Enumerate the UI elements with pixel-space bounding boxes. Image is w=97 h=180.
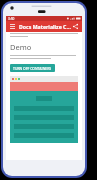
- button[interactable]: TURN OFF CONTAINERS: [10, 64, 55, 72]
- staticText: Demo: [10, 42, 32, 52]
- staticText: Docs Materialize CSS: [19, 23, 71, 30]
- button[interactable]: Open navigation menu: [8, 22, 17, 31]
- staticText: 3:50: [8, 17, 15, 21]
- button[interactable]: Share: [71, 22, 80, 31]
- staticText: TURN OFF CONTAINERS: [13, 66, 52, 71]
